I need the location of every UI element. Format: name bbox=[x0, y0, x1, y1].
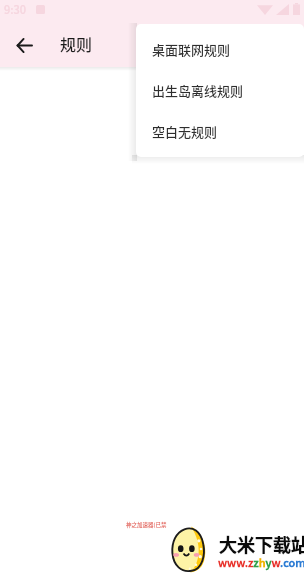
staticText: 规则 bbox=[60, 32, 93, 55]
staticText: 空白无规则 bbox=[152, 122, 218, 141]
staticText: www.zzhyw.com bbox=[218, 554, 304, 570]
staticText: 大米下载站 bbox=[219, 531, 304, 557]
button[interactable]: Back bbox=[4, 25, 44, 65]
staticText: 桌面联网规则 bbox=[152, 40, 231, 59]
staticText: 神之加速器(已禁 bbox=[126, 521, 167, 529]
button[interactable]: 桌面联网规则 bbox=[136, 29, 304, 70]
staticText: 9:30 bbox=[4, 1, 27, 17]
button[interactable]: 空白无规则 bbox=[136, 111, 304, 152]
staticText: 出生岛离线规则 bbox=[152, 81, 244, 100]
button[interactable]: 出生岛离线规则 bbox=[136, 70, 304, 111]
